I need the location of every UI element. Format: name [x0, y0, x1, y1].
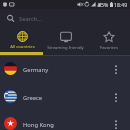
staticText: Germany	[23, 66, 49, 74]
button[interactable]: Hong Kong	[0, 110, 130, 130]
button[interactable]: Greece	[0, 83, 130, 110]
button[interactable]: Favorites	[87, 28, 130, 55]
button[interactable]: Germany	[0, 55, 130, 82]
button[interactable]: Streaming friendly	[44, 28, 87, 55]
button[interactable]: More options	[108, 89, 124, 105]
staticText: All countries	[10, 44, 35, 50]
staticText: 18:49	[114, 1, 128, 8]
other: Search	[6, 14, 15, 23]
staticText: 55%	[98, 1, 109, 8]
staticText: Search...	[19, 15, 43, 23]
staticText: Hong Kong	[23, 121, 54, 129]
staticText: Favorites	[100, 45, 118, 51]
button[interactable]: More options	[108, 116, 124, 130]
button[interactable]: All countries	[0, 28, 44, 55]
staticText: Greece	[23, 94, 43, 102]
button[interactable]: Search	[0, 9, 130, 28]
staticText: Streaming friendly	[47, 45, 84, 51]
button[interactable]: More options	[108, 61, 124, 77]
